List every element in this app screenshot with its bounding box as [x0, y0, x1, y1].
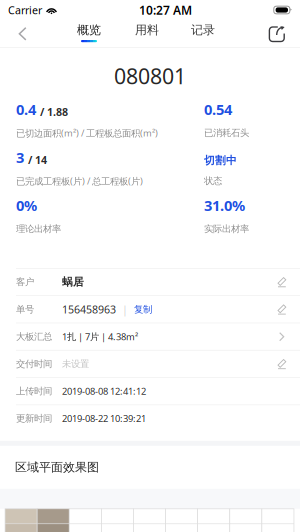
staticText: 1扎 | 7片 | 4.38m²	[62, 330, 138, 343]
staticText: 理论出材率	[16, 223, 61, 235]
button[interactable]: Share	[254, 20, 300, 48]
staticText: |	[122, 302, 128, 316]
staticText: 用料	[135, 23, 159, 37]
staticText: 2019-08-08 12:41:12	[62, 385, 146, 397]
staticText: 记录	[191, 23, 215, 37]
staticText: 3	[16, 147, 24, 167]
staticText: 单号	[16, 304, 34, 315]
staticText: 蜗居	[62, 275, 84, 288]
staticText: 0.4	[16, 99, 36, 119]
button[interactable]: 用料	[130, 20, 164, 48]
staticText: 已消耗石头	[204, 127, 249, 139]
button[interactable]: 客户	[0, 269, 300, 295]
staticText: 已完成工程板(片) / 总工程板(片)	[16, 175, 143, 187]
staticText: 更新时间	[16, 413, 52, 424]
staticText: 0%	[16, 195, 37, 215]
staticText: 实际出材率	[204, 223, 249, 235]
staticText: 切割中	[204, 154, 237, 167]
staticText: 概览	[77, 23, 101, 37]
button[interactable]: Back	[0, 20, 46, 48]
button[interactable]: 更新时间	[0, 405, 300, 432]
staticText: 上传时间	[16, 385, 52, 397]
staticText: 复制	[134, 304, 152, 315]
staticText: 已切边面积(m²) / 工程板总面积(m²)	[16, 127, 158, 139]
staticText: 区域平面效果图	[15, 460, 99, 475]
staticText: / 14	[28, 153, 47, 167]
staticText: 状态	[204, 175, 222, 187]
button[interactable]: 概览	[72, 20, 106, 48]
staticText: Carrier	[8, 3, 42, 17]
button[interactable]: 上传时间	[0, 378, 300, 404]
staticText: 31.0%	[204, 195, 245, 215]
staticText: 2019-08-22 10:39:21	[62, 412, 146, 425]
staticText: 0.54	[204, 99, 232, 119]
button[interactable]: 交付时间	[0, 351, 300, 377]
staticText: 大板汇总	[16, 331, 52, 342]
button[interactable]: 记录	[186, 20, 220, 48]
staticText: 未设置	[62, 358, 89, 370]
staticText: 10:27 AM	[139, 2, 192, 18]
button[interactable]: 单号	[0, 296, 300, 323]
staticText: 080801	[114, 62, 186, 90]
button[interactable]: 大板汇总	[0, 323, 300, 350]
staticText: 交付时间	[16, 358, 52, 370]
staticText: 客户	[16, 276, 34, 288]
staticText: / 1.88	[40, 105, 68, 119]
staticText: 156458963	[62, 302, 116, 316]
